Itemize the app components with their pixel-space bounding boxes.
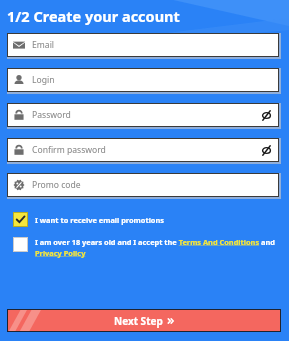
button[interactable]: Promo code <box>7 173 279 197</box>
staticText: Confirm password <box>32 144 106 156</box>
button[interactable]: Show password <box>260 144 273 157</box>
staticText: I am over 18 years old and I accept the … <box>35 237 281 258</box>
staticText: Promo code <box>32 179 81 191</box>
staticText: Login <box>32 74 55 86</box>
button[interactable]: Checked <box>13 212 28 227</box>
button[interactable]: Unchecked <box>0 237 289 258</box>
staticText: 1/2 Create your account <box>7 6 180 26</box>
button[interactable]: Checked <box>0 210 289 229</box>
staticText: Password <box>32 109 71 121</box>
button[interactable]: Next Step <box>7 309 281 332</box>
staticText: Next Step <box>114 314 163 328</box>
button[interactable]: Show password <box>260 109 273 122</box>
button[interactable]: Email <box>7 33 279 57</box>
button[interactable]: Password <box>7 103 279 127</box>
button[interactable]: Unchecked <box>13 237 28 252</box>
button[interactable]: Confirm password <box>7 138 279 162</box>
staticText: I want to receive email promotions <box>35 215 164 225</box>
button[interactable]: Login <box>7 68 279 92</box>
staticText: Email <box>32 39 55 51</box>
